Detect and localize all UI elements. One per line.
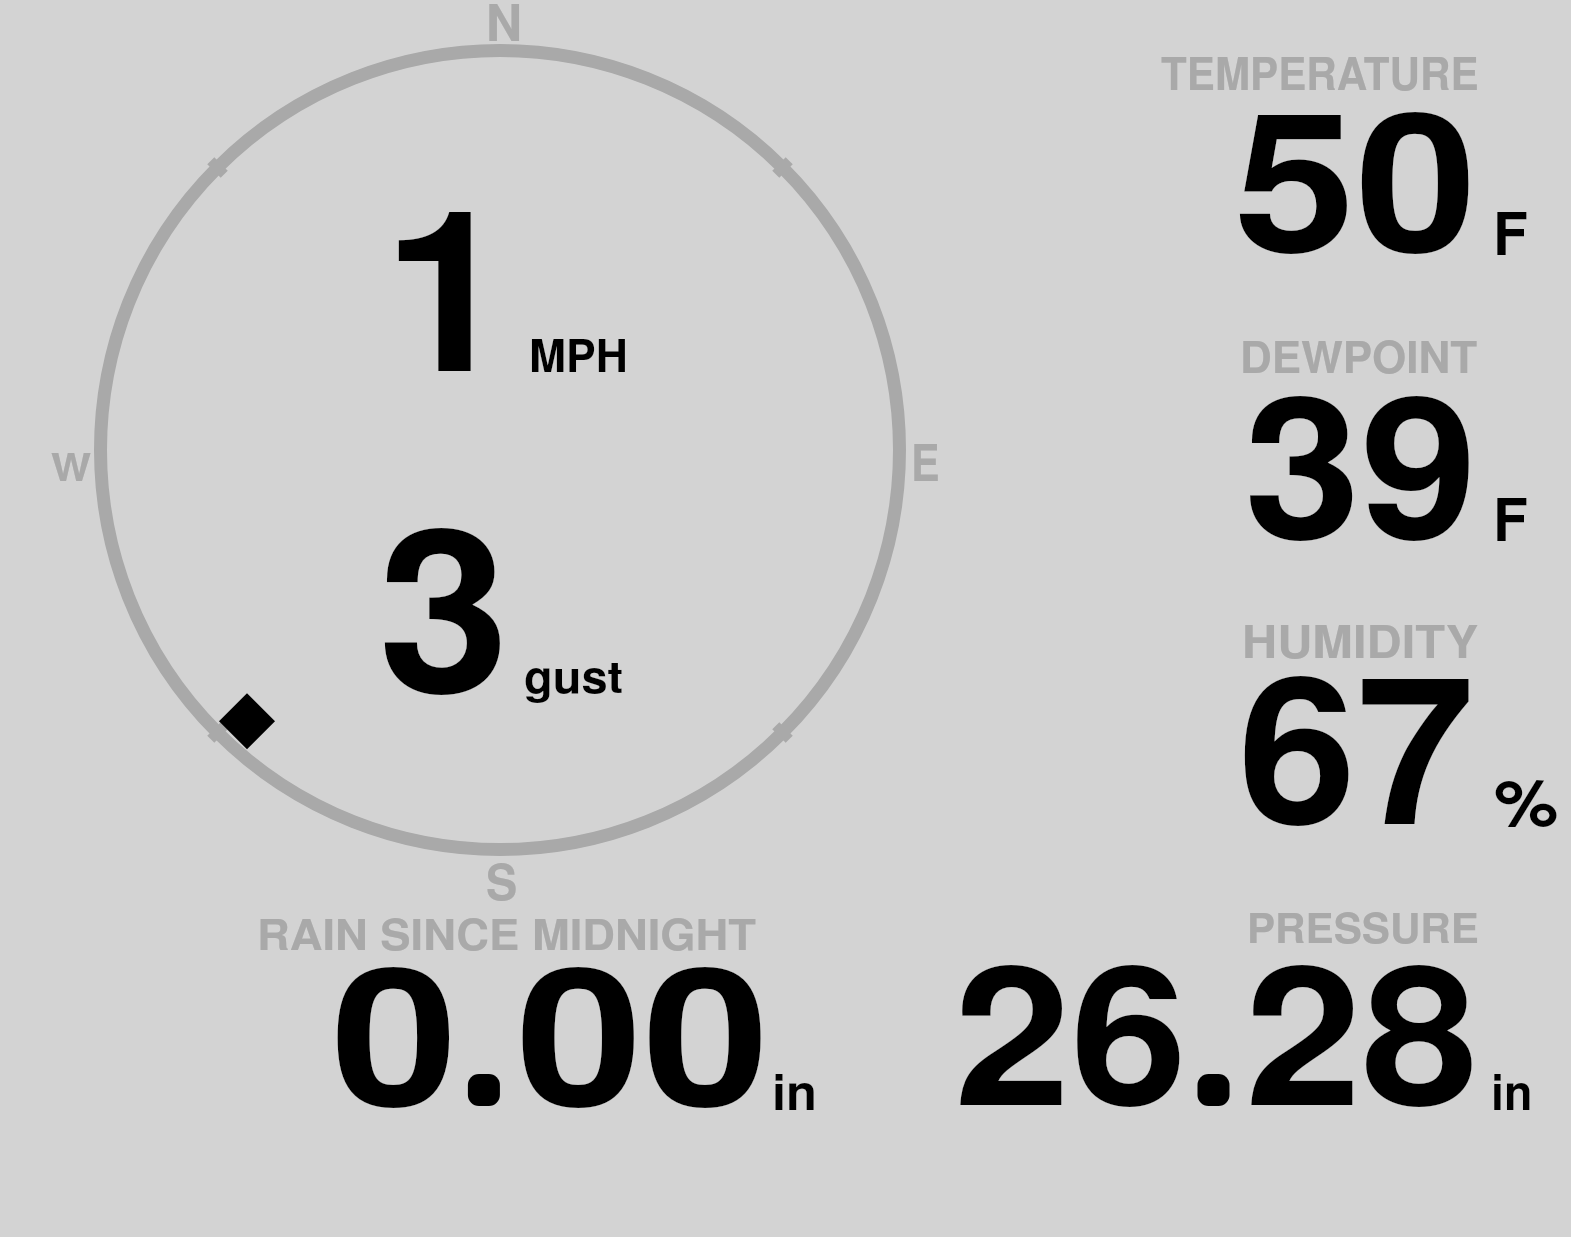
staticText: gust — [524, 643, 623, 706]
staticText: RAIN SINCE MIDNIGHT — [257, 902, 757, 963]
button[interactable]: Temperature 50 F — [1100, 20, 1555, 290]
staticText: 3 — [378, 437, 510, 763]
staticText: 00 — [516, 890, 770, 1165]
staticText: 0 — [331, 890, 458, 1165]
staticText: 28 — [1245, 887, 1479, 1164]
button[interactable]: Dewpoint 39 F — [1100, 300, 1555, 575]
staticText: in — [1491, 1056, 1533, 1125]
staticText: HUMIDITY — [1242, 607, 1479, 671]
staticText: 67 — [1238, 594, 1475, 887]
button[interactable]: Pressure 26.28 in — [930, 895, 1555, 1135]
staticText: E — [911, 423, 940, 497]
button[interactable]: Wind speed and direction — [20, 0, 960, 890]
staticText: 50 — [1234, 34, 1478, 311]
staticText: PRESSURE — [1247, 896, 1479, 955]
staticText: N — [486, 0, 523, 57]
staticText: F — [1493, 189, 1528, 273]
staticText: in — [772, 1056, 817, 1125]
staticText: W — [51, 437, 91, 493]
staticText: S — [486, 844, 518, 915]
button[interactable]: Rain since midnight 0.00 in — [230, 895, 850, 1135]
staticText: TEMPERATURE — [1161, 39, 1479, 103]
staticText: F — [1493, 475, 1528, 559]
staticText: MPH — [529, 321, 628, 386]
staticText: 39 — [1244, 317, 1477, 600]
staticText: 26 — [954, 887, 1188, 1164]
staticText: 1 — [383, 119, 513, 440]
button[interactable]: Humidity 67 percent — [1100, 585, 1555, 860]
staticText: DEWPOINT — [1240, 324, 1478, 387]
staticText: % — [1494, 753, 1559, 846]
